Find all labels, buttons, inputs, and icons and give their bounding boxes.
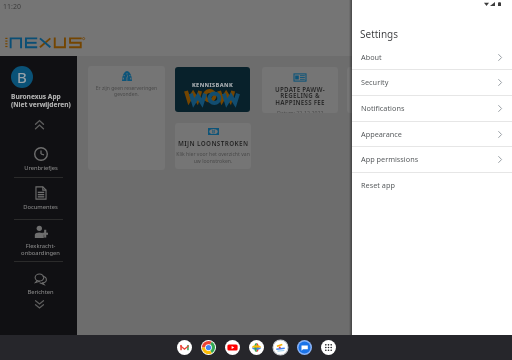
staticText: Settings <box>360 27 399 41</box>
button[interactable]: Documentes <box>0 186 77 211</box>
staticText: Security <box>361 77 389 87</box>
staticText: Documentes <box>23 203 58 211</box>
button[interactable]: Appearance <box>352 121 512 147</box>
button[interactable]: Messages <box>297 340 312 355</box>
button[interactable]: Flexkracht- onboardingen <box>0 225 77 257</box>
button[interactable]: Security <box>352 69 512 95</box>
staticText: Reset app <box>361 180 395 190</box>
button[interactable]: Gmail <box>177 340 192 355</box>
button[interactable]: Notifications <box>352 95 512 121</box>
button[interactable]: Chrome <box>201 340 216 355</box>
button[interactable]: App permissions <box>352 146 512 172</box>
staticText: MIJN LOONSTROKEN <box>178 139 249 148</box>
button[interactable]: MIJN LOONSTROKEN <box>175 123 251 169</box>
staticText: App permissions <box>361 154 419 164</box>
staticText: Berichten <box>27 288 54 296</box>
button[interactable]: KENNISBANK <box>175 67 250 112</box>
staticText: KENNISBANK <box>192 81 234 89</box>
button[interactable]: YouTube <box>225 340 240 355</box>
button[interactable]: UPDATE PAWW- REGELING & HAPPINESS FEE <box>262 67 338 113</box>
button[interactable]: Urenbriefjes <box>0 147 77 172</box>
staticText: Buronexus App (Niet verwijderen) <box>11 92 71 109</box>
staticText: About <box>361 52 382 62</box>
staticText: Klik hier voor het overzicht van uw loon… <box>176 151 250 164</box>
staticText: UPDATE PAWW- REGELING & HAPPINESS FEE <box>275 85 325 107</box>
button[interactable]: Collapse <box>35 120 44 130</box>
button[interactable]: B <box>11 66 33 88</box>
staticText: 11:20 <box>3 2 21 12</box>
button[interactable]: Maps <box>273 340 288 355</box>
button[interactable]: Er zijn geen reserveringen gevonden. <box>88 66 165 170</box>
button[interactable]: Reset app <box>352 172 512 198</box>
button[interactable]: Berichten <box>0 271 77 296</box>
staticText: Flexkracht- onboardingen <box>21 242 60 257</box>
staticText: Datum: 22-12-2022 <box>277 109 324 113</box>
button[interactable]: Expand <box>35 300 44 309</box>
button[interactable] <box>347 67 423 113</box>
staticText: Urenbriefjes <box>24 164 58 172</box>
staticText: Appearance <box>361 129 402 139</box>
button[interactable]: Photos <box>249 340 264 355</box>
staticText: B <box>17 67 27 87</box>
button[interactable]: All apps <box>321 340 336 355</box>
staticText: Er zijn geen reserveringen gevonden. <box>91 85 162 98</box>
button[interactable]: About <box>352 44 512 70</box>
staticText: Notifications <box>361 103 405 113</box>
